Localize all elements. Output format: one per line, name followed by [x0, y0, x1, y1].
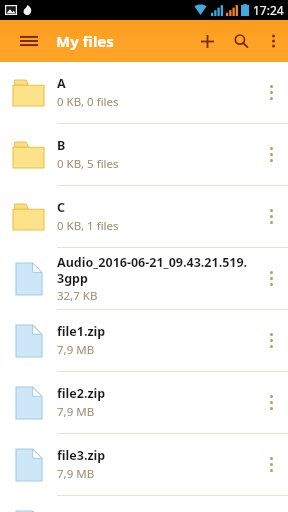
- button[interactable]: Item options: [254, 124, 288, 185]
- staticText: My files: [56, 31, 114, 51]
- button[interactable]: C: [0, 186, 288, 247]
- button[interactable]: file4.zip: [0, 496, 288, 512]
- staticText: file3.zip: [57, 447, 106, 464]
- staticText: Audio_2016-06-21_09.43.21.519.3gpp: [57, 254, 248, 286]
- button[interactable]: Item options: [254, 434, 288, 495]
- button[interactable]: file2.zip: [0, 372, 288, 433]
- button[interactable]: Audio_2016-06-21_09.43.21.519.3gpp: [0, 248, 288, 309]
- staticText: file1.zip: [57, 323, 106, 340]
- staticText: B: [57, 137, 66, 154]
- button[interactable]: B: [0, 124, 288, 185]
- staticText: C: [57, 199, 66, 216]
- staticText: 0 KB, 1 files: [57, 218, 119, 234]
- button[interactable]: Search: [224, 20, 258, 62]
- staticText: 32,7 KB: [57, 288, 98, 304]
- button[interactable]: More options: [258, 20, 288, 62]
- button[interactable]: file1.zip: [0, 310, 288, 371]
- button[interactable]: A: [0, 62, 288, 123]
- staticText: 7,9 MB: [57, 342, 95, 358]
- button[interactable]: Add: [190, 20, 224, 62]
- button[interactable]: file3.zip: [0, 434, 288, 495]
- staticText: A: [57, 75, 66, 92]
- button[interactable]: Item options: [254, 310, 288, 371]
- button[interactable]: Open navigation menu: [14, 26, 44, 56]
- staticText: file2.zip: [57, 385, 106, 402]
- staticText: 7,9 MB: [57, 466, 95, 482]
- staticText: 7,9 MB: [57, 404, 95, 420]
- button[interactable]: Item options: [254, 248, 288, 309]
- button[interactable]: Item options: [254, 372, 288, 433]
- staticText: 0 KB, 0 files: [57, 94, 119, 110]
- button[interactable]: Item options: [254, 186, 288, 247]
- staticText: 17:24: [253, 2, 284, 18]
- staticText: 0 KB, 5 files: [57, 156, 119, 172]
- button[interactable]: Item options: [254, 62, 288, 123]
